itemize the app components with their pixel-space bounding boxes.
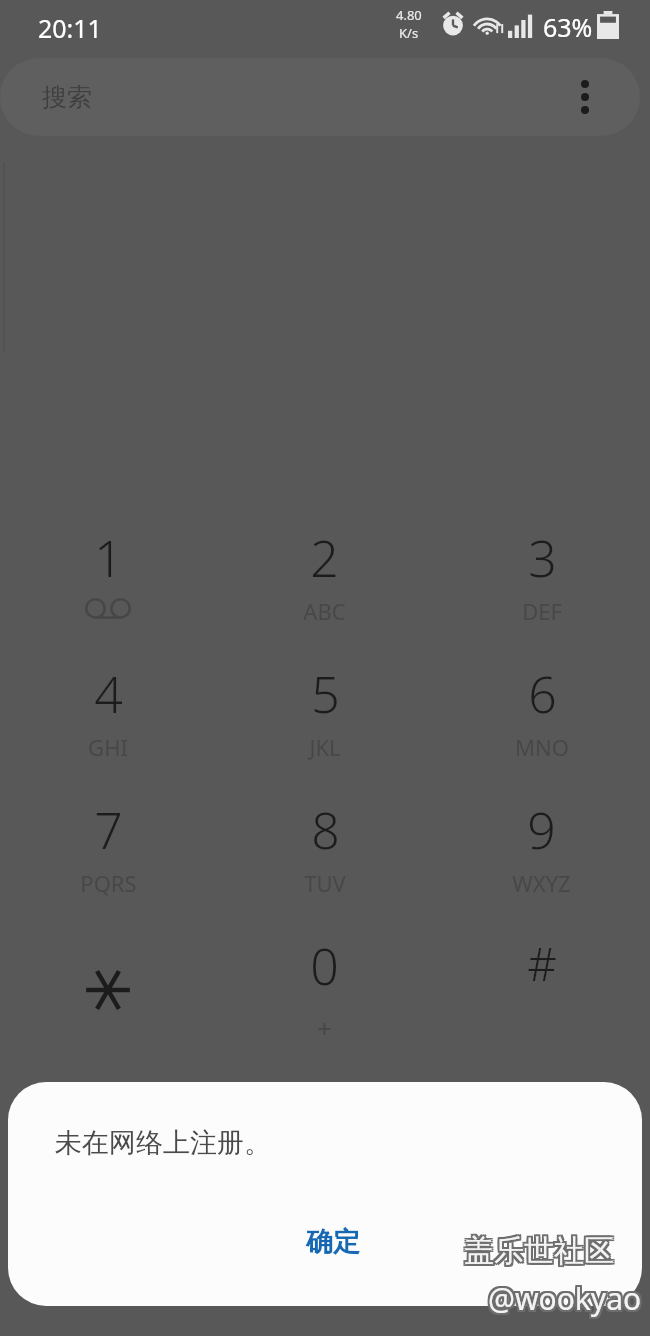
staticText: 盖乐世社区 [464,1234,614,1272]
staticText: 盖乐世社区 [464,1230,614,1268]
staticText: PQRS [80,868,137,898]
staticText: 盖乐世社区 [466,1234,616,1272]
staticText: ABC [303,596,346,626]
button[interactable]: 0 [216,932,433,1064]
staticText: 5 [311,660,340,728]
staticText: 盖乐世社区 [464,1232,614,1270]
staticText: 确定 [306,1225,360,1259]
staticText: 9 [527,796,556,864]
staticText: @wookyao [486,1280,640,1321]
staticText: K/s [399,24,419,42]
staticText: 20:11 [38,11,102,45]
button[interactable]: 6 [433,660,650,792]
button[interactable]: 8 [216,796,433,928]
button[interactable]: # [433,932,650,1064]
button[interactable]: 4 [0,660,216,792]
button[interactable]: 搜索 [0,58,640,136]
staticText: 盖乐世社区 [466,1230,616,1268]
staticText: WXYZ [512,868,571,898]
staticText: 4.80 [396,6,422,24]
staticText: # [527,932,557,995]
staticText: 4 [94,660,123,728]
button[interactable]: More options [564,76,606,118]
button[interactable]: 5 [216,660,433,792]
staticText: @wookyao [488,1280,642,1321]
staticText: 6 [528,660,557,728]
staticText: MNO [515,732,569,762]
staticText: 3 [528,524,557,592]
button[interactable] [0,932,216,1064]
staticText: @wookyao [486,1278,640,1319]
staticText: TUV [304,868,346,898]
button[interactable]: 2 [216,524,433,656]
button[interactable]: 确定 [248,1204,418,1280]
staticText: @wookyao [488,1276,642,1317]
staticText: 搜索 [42,82,92,113]
button[interactable]: 7 [0,796,216,928]
button[interactable]: 3 [433,524,650,656]
staticText: @wookyao [490,1280,644,1321]
staticText: @wookyao [486,1276,640,1317]
staticText: JKL [309,732,341,762]
staticText: + [317,1010,332,1045]
staticText: GHI [88,732,128,762]
staticText: 盖乐世社区 [462,1230,612,1268]
staticText: 0 [310,932,339,1000]
staticText: 未在网络上注册。 [55,1126,271,1160]
staticText: 7 [94,796,123,864]
staticText: 盖乐世社区 [466,1232,616,1270]
staticText: @wookyao [488,1278,642,1319]
button[interactable]: 9 [433,796,650,928]
staticText: DEF [522,596,562,626]
staticText: 2 [310,524,339,592]
staticText: @wookyao [490,1276,644,1317]
staticText: @wookyao [490,1278,644,1319]
staticText: 盖乐世社区 [462,1232,612,1270]
button[interactable]: 1 [0,524,216,656]
staticText: 盖乐世社区 [462,1234,612,1272]
staticText: 1 [94,524,123,592]
staticText: 63% [543,10,593,44]
staticText: 8 [311,796,340,864]
